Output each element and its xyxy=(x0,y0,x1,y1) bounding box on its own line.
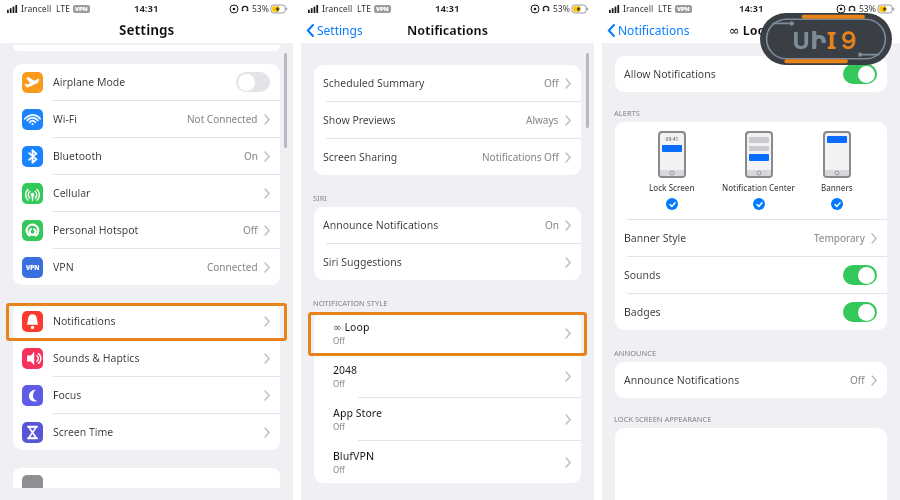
staticText: Badges xyxy=(624,305,843,319)
button[interactable]: Badges xyxy=(615,294,887,330)
staticText: Lock Screen xyxy=(649,182,695,193)
staticText: 53% xyxy=(859,3,876,15)
staticText: UԻ xyxy=(792,23,827,56)
staticText: LTE xyxy=(56,3,70,15)
button[interactable]: BlufVPN xyxy=(314,441,581,483)
button[interactable]: Screen Sharing xyxy=(314,139,581,175)
staticText: LTE xyxy=(357,3,371,15)
staticText: NOTIFICATION STYLE xyxy=(313,298,388,308)
staticText: Off xyxy=(333,335,345,346)
staticText: ANNOUNCE xyxy=(614,348,657,358)
staticText: Not Connected xyxy=(187,112,258,126)
staticText: Wi-Fi xyxy=(53,112,187,126)
staticText: VPN xyxy=(376,5,389,13)
staticText: LOCK SCREEN APPEARANCE xyxy=(614,414,712,424)
staticText: 14:31 xyxy=(134,2,159,15)
staticText: Airplane Mode xyxy=(53,75,236,89)
staticText: Connected xyxy=(207,260,258,274)
staticText: 14:31 xyxy=(739,2,764,15)
staticText: Siri Suggestions xyxy=(323,255,565,269)
button[interactable]: App Store xyxy=(314,398,581,440)
button[interactable]: Screen Time xyxy=(13,414,280,450)
button[interactable] xyxy=(843,64,877,84)
staticText: Irancell xyxy=(322,3,353,15)
staticText: Cellular xyxy=(53,186,264,200)
button[interactable]: Show Previews xyxy=(314,102,581,138)
button[interactable]: Personal Hotspot xyxy=(13,212,280,248)
staticText: 53% xyxy=(553,3,570,15)
staticText: ∞ Loop xyxy=(729,22,774,39)
staticText: 2048 xyxy=(333,363,358,377)
button[interactable]: Back to Notifications xyxy=(608,22,690,38)
staticText: Off xyxy=(850,373,865,387)
button[interactable]: Announce Notifications xyxy=(615,362,887,398)
staticText: Notifications xyxy=(618,22,690,38)
staticText: ALERTS xyxy=(614,108,640,118)
staticText: Notification Center xyxy=(722,182,795,193)
button[interactable]: ∞ Loop xyxy=(314,312,581,354)
staticText: SIRI xyxy=(313,193,327,203)
button[interactable]: Scheduled Summary xyxy=(314,65,581,101)
button[interactable] xyxy=(236,72,270,92)
button[interactable]: Focus xyxy=(13,377,280,413)
staticText: 53% xyxy=(252,3,269,15)
button[interactable]: Siri Suggestions xyxy=(314,244,581,280)
staticText: Bluetooth xyxy=(53,149,244,163)
button[interactable]: Cellular xyxy=(13,175,280,211)
button[interactable]: Bluetooth xyxy=(13,138,280,174)
staticText: LTE xyxy=(658,3,672,15)
button[interactable]: Wi-Fi xyxy=(13,101,280,137)
staticText: Scheduled Summary xyxy=(323,76,544,90)
staticText: VPN xyxy=(53,260,207,274)
staticText: Notifications xyxy=(53,314,264,328)
button[interactable]: Allow Notifications xyxy=(615,56,887,92)
staticText: Banners xyxy=(821,182,853,193)
button[interactable]: 2048 xyxy=(314,355,581,397)
staticText: On xyxy=(545,218,559,232)
button[interactable]: Airplane Mode xyxy=(13,64,280,100)
button[interactable]: Back to Settings xyxy=(307,22,363,38)
staticText: VPN xyxy=(75,5,88,13)
staticText: Off xyxy=(544,76,559,90)
staticText: VPN xyxy=(677,5,690,13)
staticText: Always xyxy=(526,113,559,127)
button[interactable] xyxy=(843,265,877,285)
button[interactable]: Sounds xyxy=(615,257,887,293)
staticText: Irancell xyxy=(21,3,52,15)
button[interactable]: Banner Style xyxy=(615,220,887,256)
staticText: ∞ Loop xyxy=(333,320,370,334)
button[interactable]: VPN xyxy=(13,249,280,285)
staticText: Allow Notifications xyxy=(624,67,843,81)
staticText: Off xyxy=(333,421,345,432)
staticText: Irancell xyxy=(623,3,654,15)
staticText: On xyxy=(244,149,258,163)
staticText: Off xyxy=(333,464,345,475)
staticText: 14:31 xyxy=(435,2,460,15)
staticText: Announce Notifications xyxy=(624,373,850,387)
button[interactable]: Banners selected xyxy=(831,198,843,210)
staticText: Notifications xyxy=(407,22,489,39)
staticText: Temporary xyxy=(814,231,865,245)
button[interactable]: Announce Notifications xyxy=(314,207,581,243)
staticText: Personal Hotspot xyxy=(53,223,243,237)
button[interactable]: Sounds & Haptics xyxy=(13,340,280,376)
staticText: BlufVPN xyxy=(333,449,375,463)
staticText: I９ xyxy=(827,23,861,56)
staticText: Sounds & Haptics xyxy=(53,351,264,365)
staticText: VPN xyxy=(26,263,40,272)
staticText: Focus xyxy=(53,388,264,402)
button[interactable]: Notification Center selected xyxy=(753,198,765,210)
button[interactable]: Lock Screen selected xyxy=(666,198,678,210)
staticText: 09:41 xyxy=(660,136,684,143)
staticText: Banner Style xyxy=(624,231,814,245)
button[interactable]: Notifications xyxy=(13,303,280,339)
staticText: Screen Sharing xyxy=(323,150,482,164)
staticText: Notifications Off xyxy=(482,150,559,164)
button[interactable] xyxy=(843,302,877,322)
staticText: Announce Notifications xyxy=(323,218,545,232)
staticText: Sounds xyxy=(624,268,843,282)
staticText: Screen Time xyxy=(53,425,264,439)
staticText: Settings xyxy=(317,22,363,38)
staticText: Settings xyxy=(119,21,175,39)
staticText: Show Previews xyxy=(323,113,526,127)
